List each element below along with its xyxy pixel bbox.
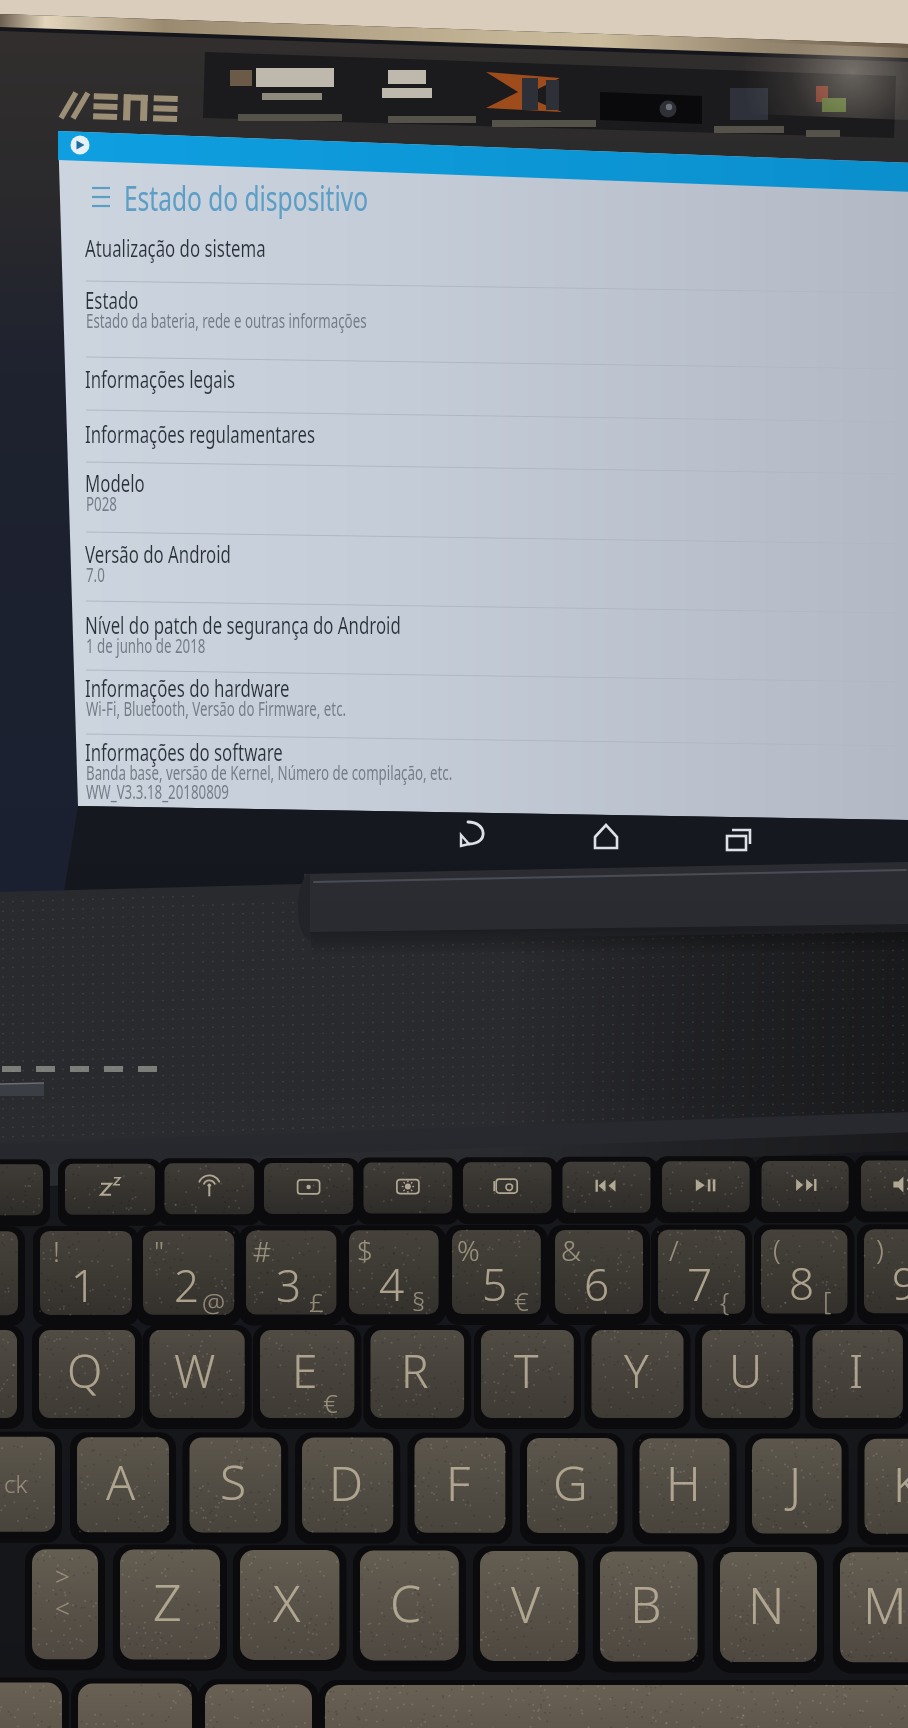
staticText: M bbox=[863, 1571, 907, 1639]
staticText: H bbox=[666, 1450, 701, 1515]
staticText: 8 bbox=[789, 1253, 815, 1313]
staticText: & bbox=[561, 1231, 582, 1269]
staticText: 9 bbox=[892, 1253, 908, 1313]
staticText: P028 bbox=[86, 491, 117, 517]
staticText: 6 bbox=[584, 1254, 610, 1314]
staticText: 7 bbox=[687, 1254, 713, 1314]
staticText: / bbox=[669, 1231, 679, 1269]
staticText: " bbox=[154, 1232, 165, 1270]
staticText: Versão do Android bbox=[85, 537, 231, 570]
staticText: > bbox=[55, 1558, 70, 1593]
staticText: ck bbox=[4, 1467, 28, 1500]
staticText: Modelo bbox=[85, 466, 145, 499]
staticText: Q bbox=[67, 1339, 103, 1402]
button[interactable]: Informações regulamentares bbox=[85, 417, 845, 455]
staticText: € bbox=[514, 1283, 529, 1318]
staticText: S bbox=[220, 1449, 247, 1514]
staticText: § bbox=[412, 1283, 426, 1318]
button[interactable]: Informações legais bbox=[85, 362, 845, 400]
staticText: % bbox=[457, 1231, 480, 1269]
staticText: D bbox=[329, 1450, 364, 1515]
staticText: Informações regulamentares bbox=[85, 417, 315, 450]
staticText: Estado bbox=[85, 283, 139, 316]
staticText: Informações do software bbox=[85, 735, 283, 768]
staticText: F bbox=[446, 1450, 471, 1515]
staticText: # bbox=[253, 1232, 272, 1270]
staticText: < bbox=[55, 1590, 70, 1625]
staticText: Estado do dispositivo bbox=[124, 174, 368, 220]
staticText: Estado da bateria, rede e outras informa… bbox=[86, 308, 367, 334]
staticText: B bbox=[630, 1570, 662, 1638]
staticText: Informações do hardware bbox=[85, 671, 290, 704]
staticText: 5 bbox=[482, 1254, 508, 1314]
staticText: [ bbox=[823, 1282, 832, 1317]
staticText: Z bbox=[153, 1568, 182, 1636]
staticText: V bbox=[511, 1570, 541, 1638]
staticText: { bbox=[720, 1283, 730, 1318]
button[interactable]: Nível do patch de segurança do Android bbox=[85, 608, 845, 664]
staticText: R bbox=[401, 1339, 429, 1402]
staticText: 4 bbox=[379, 1254, 405, 1314]
button[interactable]: Informações do software bbox=[85, 735, 845, 811]
staticText: E bbox=[292, 1339, 318, 1402]
button[interactable]: Modelo bbox=[85, 466, 845, 522]
staticText: A bbox=[106, 1449, 136, 1514]
button[interactable]: Menu bbox=[84, 174, 504, 220]
staticText: ( bbox=[773, 1230, 781, 1268]
button[interactable]: Informações do hardware bbox=[85, 671, 845, 727]
staticText: N bbox=[748, 1571, 785, 1639]
staticText: 1 bbox=[71, 1255, 97, 1315]
staticText: ! bbox=[53, 1232, 60, 1270]
staticText: @ bbox=[202, 1284, 226, 1319]
staticText: WW_V3.3.18_20180809 bbox=[86, 779, 229, 805]
staticText: 2 bbox=[174, 1255, 200, 1315]
staticText: 1 de junho de 2018 bbox=[86, 633, 206, 659]
staticText: Atualização do sistema bbox=[85, 231, 266, 264]
staticText: U bbox=[729, 1339, 763, 1402]
staticText: 7.0 bbox=[86, 562, 105, 588]
staticText: Nível do patch de segurança do Android bbox=[85, 608, 401, 641]
staticText: W bbox=[174, 1339, 216, 1402]
staticText: € bbox=[323, 1385, 338, 1420]
staticText: J bbox=[789, 1451, 802, 1516]
staticText: 3 bbox=[276, 1255, 302, 1315]
staticText: Wi-Fi, Bluetooth, Versão do Firmware, et… bbox=[86, 696, 346, 722]
button[interactable]: Versão do Android bbox=[85, 537, 845, 593]
button[interactable]: Atualização do sistema bbox=[85, 231, 845, 269]
staticText: T bbox=[514, 1339, 539, 1402]
staticText: C bbox=[390, 1569, 422, 1637]
staticText: £ bbox=[309, 1284, 324, 1319]
staticText: I bbox=[849, 1339, 864, 1402]
staticText: Y bbox=[624, 1339, 649, 1402]
staticText: $ bbox=[357, 1231, 373, 1269]
button[interactable]: Menu bbox=[84, 180, 118, 214]
staticText: Informações legais bbox=[85, 362, 235, 395]
staticText: K bbox=[893, 1451, 908, 1516]
staticText: G bbox=[553, 1450, 588, 1515]
staticText: ) bbox=[876, 1230, 884, 1268]
staticText: X bbox=[273, 1569, 301, 1637]
button[interactable]: Estado bbox=[85, 283, 845, 339]
staticText: Banda base, versão de Kernel, Número de … bbox=[86, 760, 453, 786]
